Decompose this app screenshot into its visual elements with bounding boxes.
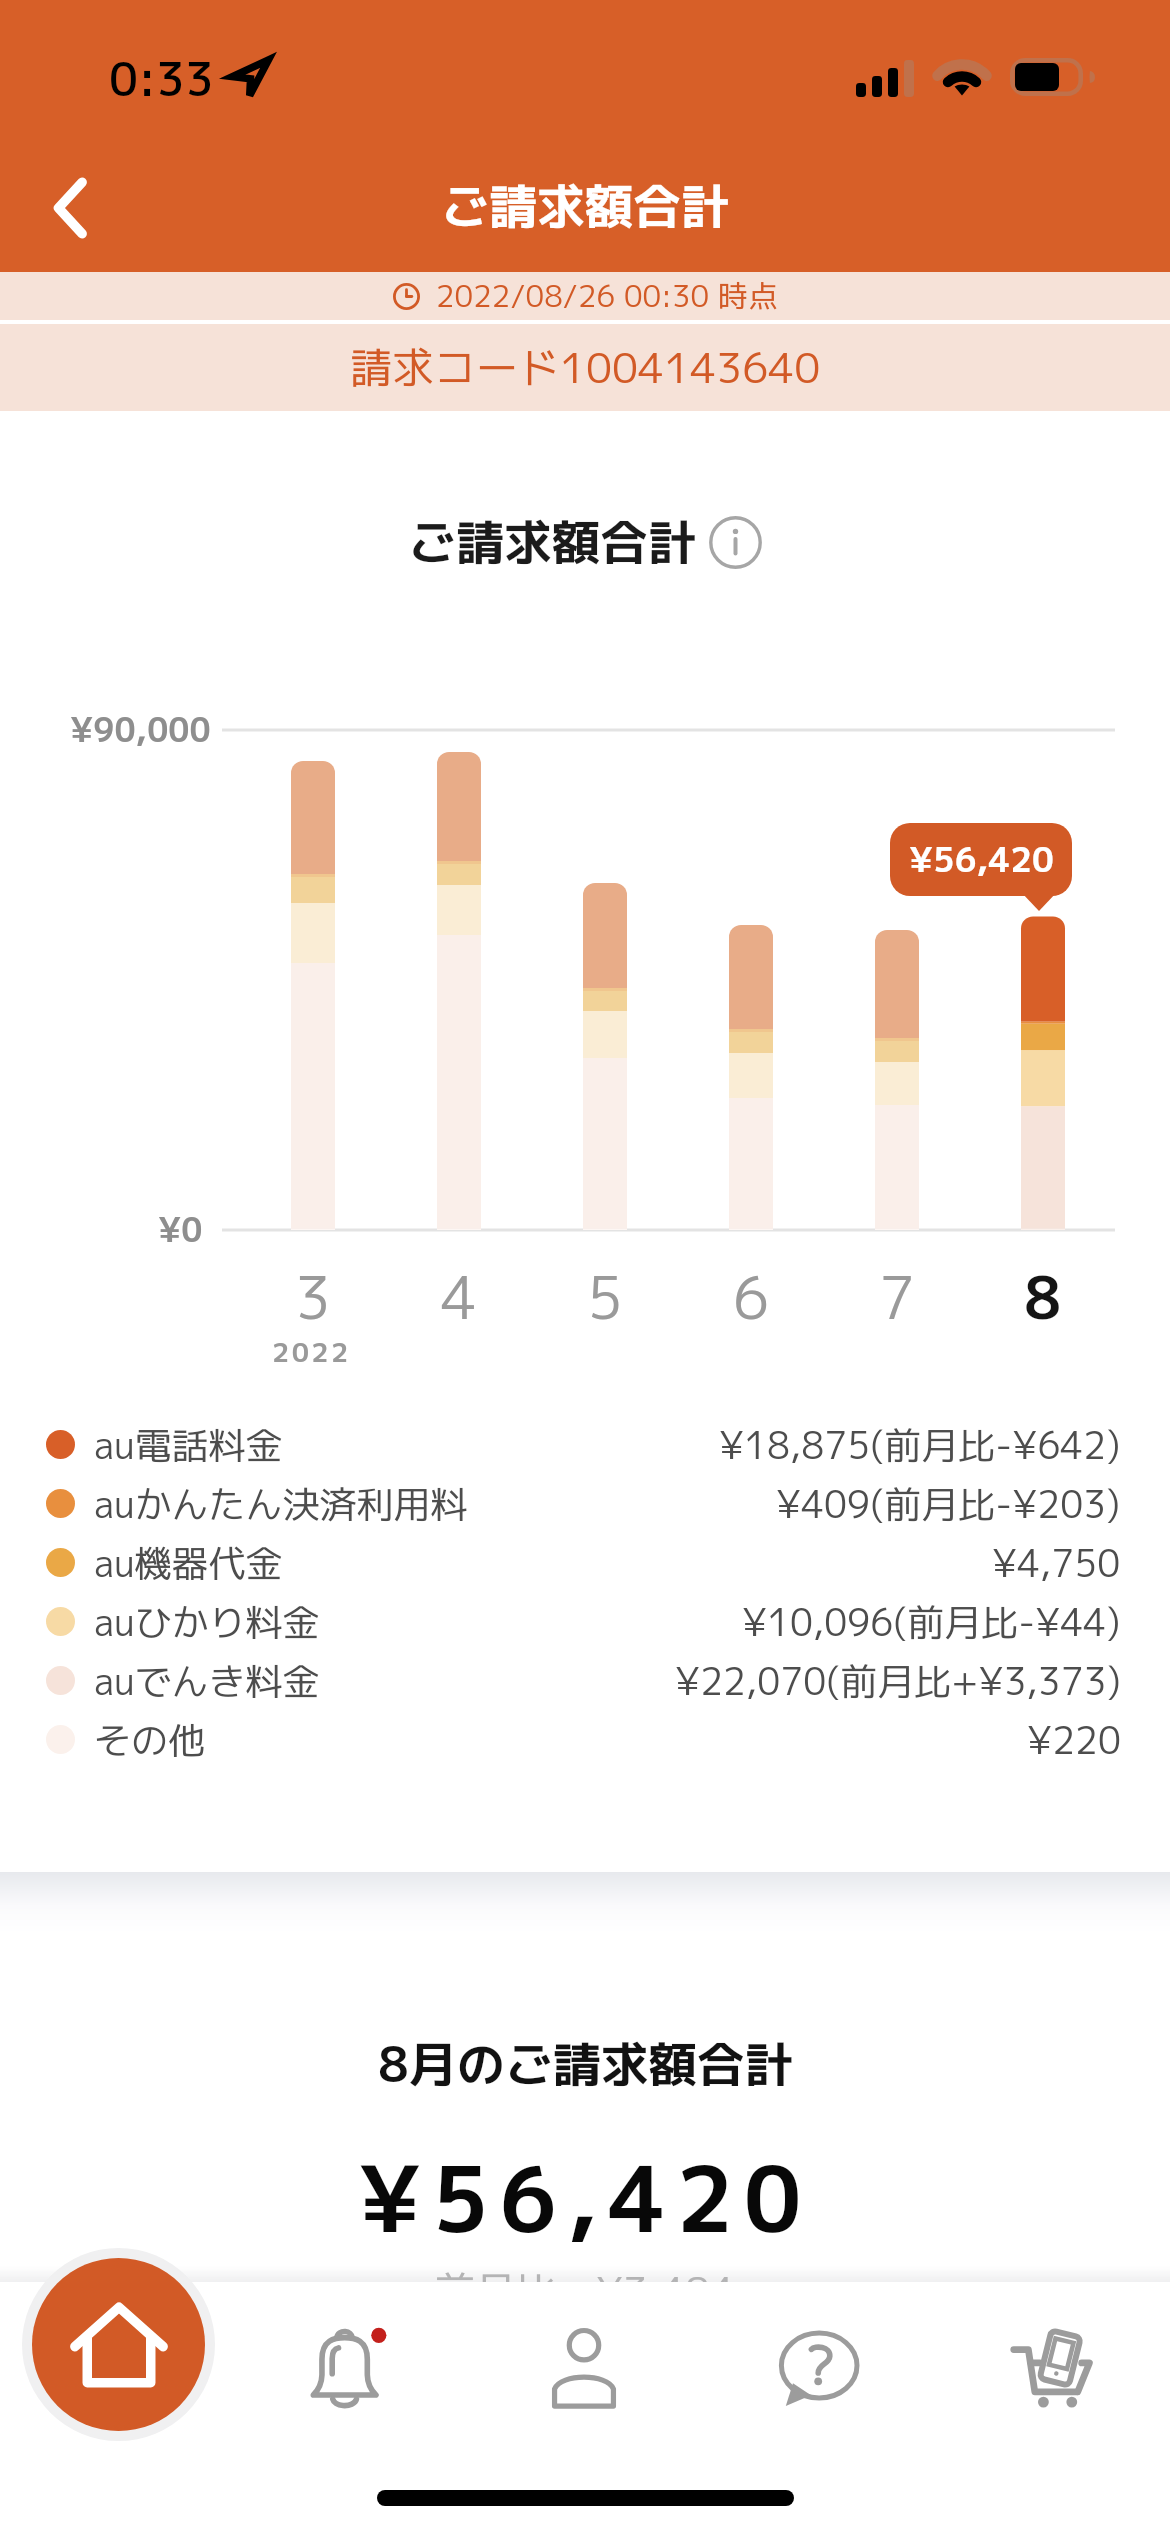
button[interactable]: au機器代金 [0,1533,1170,1592]
staticText: 0:33 [109,47,215,111]
button[interactable]: その他 [0,1710,1170,1769]
staticText: 8 [1024,1257,1062,1331]
button[interactable]: auひかり料金 [0,1592,1170,1651]
button[interactable]: auでんき料金 [0,1651,1170,1710]
staticText: auでんき料金 [94,1655,320,1707]
staticText: ¥4,750 [992,1537,1121,1589]
staticText: ¥22,070(前月比+¥3,373) [675,1655,1121,1707]
button[interactable]: サポート [731,2293,907,2443]
staticText: 6 [733,1257,769,1331]
staticText: 8月のご請求額合計 [378,2030,793,2097]
staticText: 請求コード1004143640 [350,338,821,397]
staticText: 2022/08/26 00:30 時点 [436,275,778,317]
staticText: ご請求額合計 [408,508,697,575]
staticText: ¥409(前月比-¥203) [776,1478,1121,1530]
button[interactable]: お知らせ [261,2293,437,2443]
button[interactable]: auかんたん決済利用料 [0,1474,1170,1533]
staticText: auかんたん決済利用料 [94,1478,468,1530]
staticText: 7 [879,1257,915,1331]
staticText: ¥56,420 [909,835,1054,882]
staticText: au機器代金 [94,1537,283,1589]
staticText: ¥18,875(前月比-¥642) [719,1419,1121,1471]
staticText: 3 [295,1257,331,1331]
staticText: ¥220 [1027,1714,1121,1766]
staticText: 4 [441,1257,477,1331]
button[interactable]: 説明 [707,514,763,570]
staticText: ¥56,420 [358,2135,812,2261]
button[interactable]: ショップ [964,2294,1140,2444]
button[interactable]: マイページ [496,2294,672,2444]
staticText: ご請求額合計 [441,172,730,239]
staticText: ¥0 [158,1207,203,1253]
staticText: ¥90,000 [70,707,211,753]
button[interactable]: au電話料金 [0,1415,1170,1474]
button[interactable]: 戻る [14,152,126,264]
button[interactable]: ホーム [32,2258,205,2431]
staticText: ¥10,096(前月比-¥44) [742,1596,1121,1648]
staticText: その他 [94,1714,205,1766]
staticText: 前月比 +¥3,484 [435,2263,735,2319]
staticText: auひかり料金 [94,1596,320,1648]
staticText: 2022 [272,1333,351,1371]
staticText: 5 [587,1257,623,1331]
staticText: au電話料金 [94,1419,283,1471]
